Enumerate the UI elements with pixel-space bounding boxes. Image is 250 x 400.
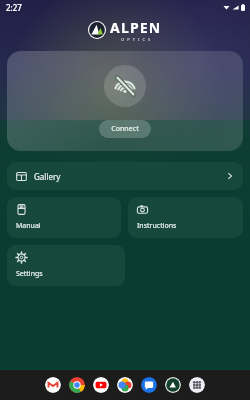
button[interactable]: Photos [117,377,133,393]
button[interactable]: All apps [189,377,205,393]
staticText: Connect [111,124,139,134]
staticText: Settings [16,269,43,279]
button[interactable]: Manual [7,197,121,238]
other: Wi-Fi disconnected [114,75,136,97]
staticText: O P T I C S [121,37,152,42]
button[interactable]: Messages [141,377,157,393]
button[interactable]: Instructions [128,197,243,238]
staticText: 2:27 [6,2,22,13]
staticText: Gallery [34,171,61,182]
staticText: Manual [16,221,41,231]
button[interactable]: Connect [99,120,151,138]
button[interactable]: Chrome [69,377,85,393]
button[interactable]: Gallery [7,162,243,190]
button[interactable]: Alpen Optics [165,377,181,393]
button[interactable]: Gmail [45,377,61,393]
button[interactable]: YouTube [93,377,109,393]
button[interactable]: Settings [7,245,125,286]
staticText: ALPEN [110,18,162,37]
staticText: Instructions [137,221,177,231]
